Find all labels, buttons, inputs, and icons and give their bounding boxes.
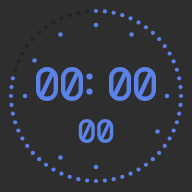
button[interactable]: Start or pause timer bbox=[36, 68, 156, 124]
button[interactable]: Timer progress ring bbox=[0, 0, 192, 192]
